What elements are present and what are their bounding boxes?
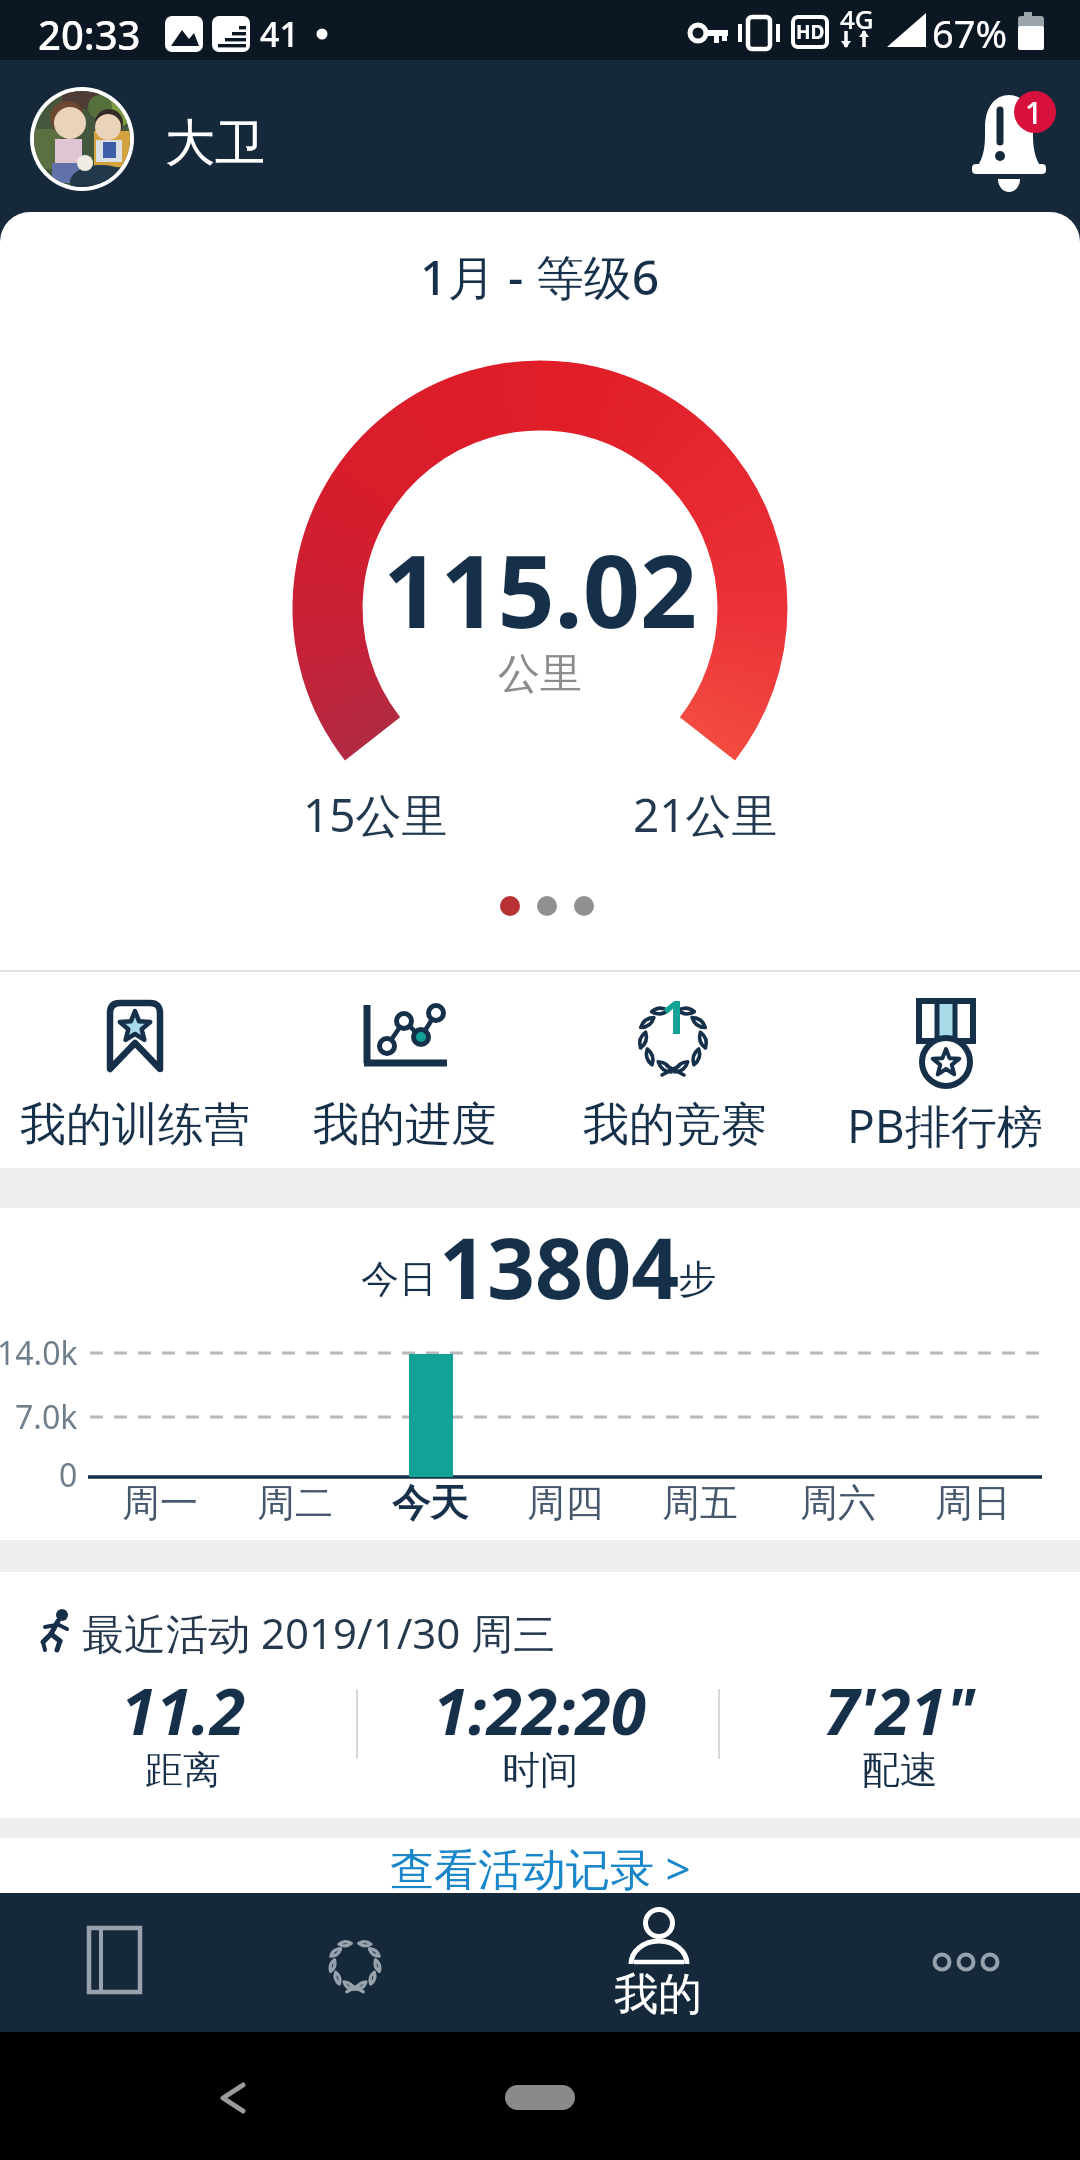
staticText: 20:33 [38, 7, 141, 61]
staticText: 1月 - 等级6 [420, 244, 660, 310]
staticText: PB排行榜 [847, 1094, 1043, 1157]
staticText: 14.0k [0, 1331, 78, 1375]
button[interactable]: 查看活动记录 > [380, 1838, 700, 1893]
staticText: 0 [59, 1453, 78, 1497]
staticText: 周四 [527, 1479, 603, 1527]
staticText: 查看活动记录 > [390, 1838, 691, 1893]
staticText: 我的竞赛 [583, 1096, 767, 1154]
staticText: 周二 [257, 1479, 333, 1527]
staticText: 11.2 [121, 1667, 246, 1754]
staticText: HD [796, 19, 825, 45]
staticText: 最近活动 2019/1/30 周三 [82, 1604, 556, 1661]
staticText: 周日 [935, 1479, 1011, 1527]
staticText: 周六 [800, 1479, 876, 1527]
staticText: 今天 [392, 1479, 468, 1527]
staticText: 21公里 [633, 783, 778, 846]
staticText: 距离 [145, 1746, 221, 1794]
staticText: 周五 [662, 1479, 738, 1527]
staticText: 41 [260, 11, 299, 57]
staticText: 配速 [862, 1746, 938, 1794]
staticText: 时间 [502, 1746, 578, 1794]
staticText: 4G [840, 1, 874, 36]
staticText: 周一 [122, 1479, 198, 1527]
staticText: 今日 [361, 1255, 437, 1303]
staticText: 7.0k [15, 1395, 78, 1439]
staticText: 7'21" [824, 1667, 976, 1754]
staticText: 1:22:20 [433, 1667, 647, 1754]
staticText: 我的训练营 [20, 1096, 250, 1154]
staticText: 67% [932, 7, 1008, 59]
staticText: 我的进度 [313, 1096, 497, 1154]
button[interactable] [540, 1893, 810, 2032]
staticText: 15公里 [303, 783, 448, 846]
button[interactable] [28, 85, 138, 195]
button[interactable] [810, 1893, 1080, 2032]
staticText: 我的 [614, 1967, 702, 2022]
button[interactable] [830, 985, 1060, 1155]
button[interactable] [20, 985, 250, 1155]
staticText: 大卫 [165, 112, 265, 175]
button[interactable] [0, 1893, 270, 2032]
button[interactable] [290, 985, 520, 1155]
staticText: 115.02 [383, 521, 698, 657]
staticText: 步 [678, 1255, 716, 1303]
staticText: 13804 [439, 1209, 680, 1323]
staticText: 1 [1025, 92, 1043, 133]
button[interactable] [960, 80, 1060, 190]
staticText: 1 [661, 985, 688, 1048]
staticText: 公里 [498, 648, 582, 701]
button[interactable] [270, 1893, 540, 2032]
button[interactable] [560, 985, 790, 1155]
